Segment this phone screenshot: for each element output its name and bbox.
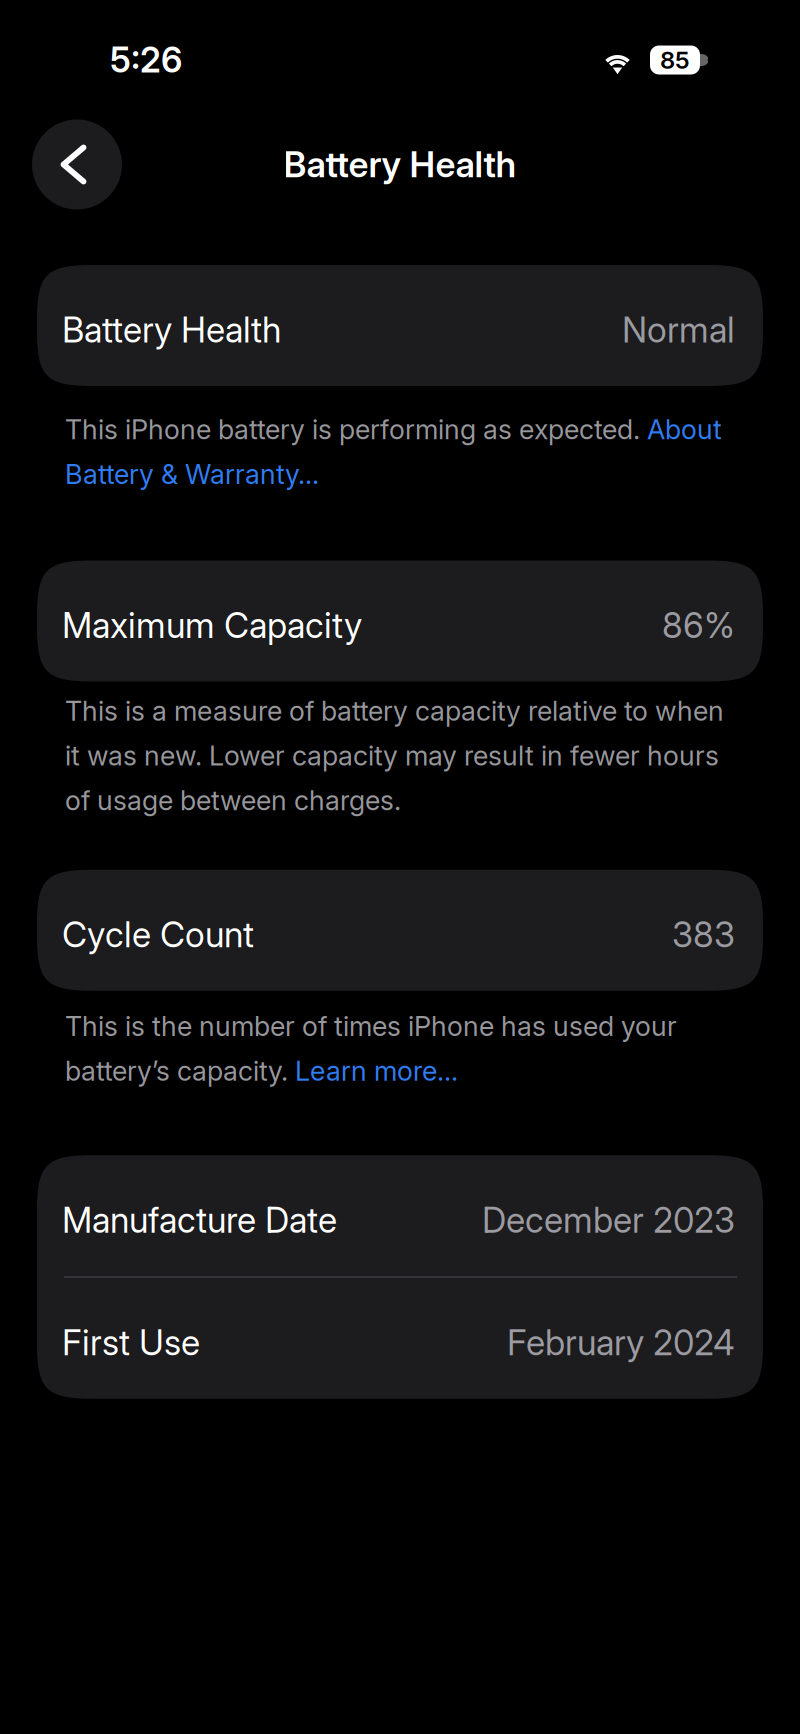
button[interactable]: Back <box>32 119 122 209</box>
staticText: This is a measure of battery capacity re… <box>65 694 724 817</box>
staticText: 85 <box>660 45 690 74</box>
button[interactable]: Battery Health <box>37 265 763 386</box>
staticText: 5:26 <box>110 39 182 81</box>
staticText: February 2024 <box>507 1322 735 1364</box>
button[interactable]: Manufacture Date <box>37 1155 763 1276</box>
staticText: 86% <box>662 604 735 646</box>
staticText: Maximum Capacity <box>62 604 362 646</box>
staticText: Manufacture Date <box>62 1199 337 1241</box>
staticText: This iPhone battery is performing as exp… <box>65 413 722 490</box>
staticText: Battery Health <box>283 143 516 186</box>
staticText: First Use <box>62 1322 200 1364</box>
staticText: Battery Health <box>62 309 281 351</box>
staticText: 383 <box>672 914 735 956</box>
staticText: December 2023 <box>482 1199 735 1241</box>
button[interactable]: First Use <box>37 1278 763 1399</box>
button[interactable]: Cycle Count <box>37 870 763 991</box>
button[interactable]: Maximum Capacity <box>37 560 763 681</box>
staticText: Normal <box>622 309 735 351</box>
staticText: Cycle Count <box>62 914 254 956</box>
staticText: This is the number of times iPhone has u… <box>65 1010 677 1087</box>
